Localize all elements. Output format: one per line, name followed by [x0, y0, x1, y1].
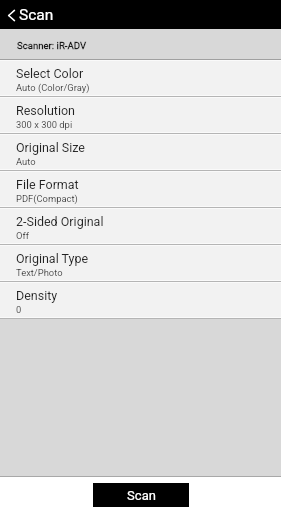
staticText: Scan: [127, 488, 156, 503]
button[interactable]: 2-Sided Original: [0, 209, 281, 243]
button[interactable]: Original Size: [0, 135, 281, 169]
staticText: Density: [16, 288, 58, 303]
other: Back: [8, 10, 15, 21]
staticText: Scanner: iR-ADV: [17, 40, 87, 51]
staticText: 0: [16, 304, 22, 315]
button[interactable]: Select Color: [0, 61, 281, 95]
button[interactable]: Original Type: [0, 246, 281, 280]
staticText: Original Size: [16, 140, 85, 155]
button[interactable]: Back: [0, 5, 58, 24]
staticText: PDF(Compact): [16, 193, 78, 204]
staticText: Auto (Color/Gray): [16, 82, 90, 93]
staticText: File Format: [16, 177, 79, 192]
staticText: Auto: [16, 156, 36, 167]
staticText: Scan: [19, 6, 54, 24]
staticText: 2-Sided Original: [16, 214, 104, 229]
staticText: Original Type: [16, 251, 89, 266]
button[interactable]: Resolution: [0, 98, 281, 132]
staticText: Off: [16, 230, 29, 241]
staticText: 300 x 300 dpi: [16, 119, 73, 130]
staticText: Text/Photo: [16, 267, 63, 278]
button[interactable]: Scan: [93, 483, 189, 507]
staticText: Resolution: [16, 103, 76, 118]
button[interactable]: File Format: [0, 172, 281, 206]
staticText: Select Color: [16, 66, 84, 81]
button[interactable]: Density: [0, 283, 281, 317]
